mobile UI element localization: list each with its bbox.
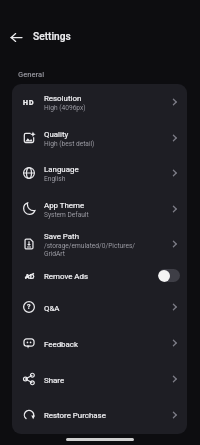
button[interactable]: App Theme bbox=[12, 191, 187, 226]
staticText: Settings bbox=[33, 31, 71, 43]
button[interactable]: Back bbox=[6, 27, 26, 47]
button[interactable]: Restore Purchase bbox=[12, 397, 187, 432]
button[interactable]: AD bbox=[12, 261, 187, 289]
staticText: Share bbox=[44, 376, 65, 385]
staticText: Language bbox=[44, 165, 79, 174]
staticText: ? bbox=[27, 303, 31, 311]
staticText: /storage/emulated/0/Pictures/ GridArt bbox=[44, 242, 136, 258]
button[interactable]: Quality bbox=[12, 120, 187, 155]
staticText: Feedback bbox=[44, 340, 78, 349]
button[interactable]: Share bbox=[12, 361, 187, 397]
staticText: HD bbox=[23, 99, 35, 107]
button[interactable]: Save Path bbox=[12, 226, 187, 261]
staticText: Resolution bbox=[44, 94, 82, 103]
button[interactable]: ? bbox=[12, 289, 187, 325]
staticText: Restore Purchase bbox=[44, 411, 106, 420]
button[interactable]: HD bbox=[12, 84, 187, 120]
staticText: General bbox=[18, 70, 45, 79]
staticText: App Theme bbox=[44, 201, 85, 210]
button[interactable]: Feedback bbox=[12, 325, 187, 361]
staticText: Q&A bbox=[44, 304, 60, 313]
button[interactable]: Language bbox=[12, 155, 187, 191]
staticText: Quality bbox=[44, 130, 69, 139]
staticText: High (4096px) bbox=[44, 104, 86, 112]
staticText: AD bbox=[25, 272, 35, 280]
staticText: System Default bbox=[44, 211, 89, 219]
staticText: Remove Ads bbox=[44, 272, 88, 281]
staticText: Save Path bbox=[44, 232, 79, 241]
staticText: High (best detail) bbox=[44, 140, 95, 148]
staticText: English bbox=[44, 175, 66, 183]
